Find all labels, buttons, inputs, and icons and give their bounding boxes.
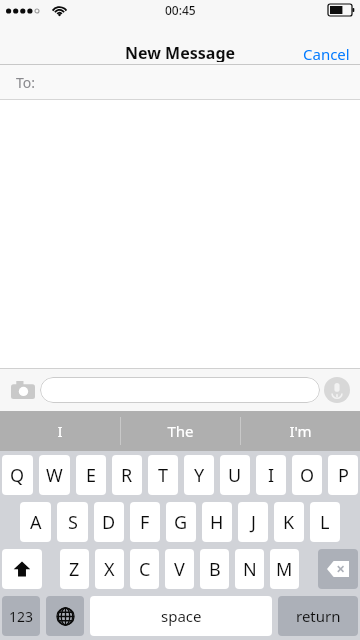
staticText: N [243, 557, 257, 582]
button[interactable]: X [95, 549, 124, 589]
button[interactable]: E [76, 455, 106, 495]
button[interactable]: G [166, 502, 196, 542]
button[interactable]: To: [0, 65, 360, 99]
button[interactable]: Q [2, 455, 33, 495]
button[interactable]: O [292, 455, 322, 495]
button[interactable]: return [278, 596, 358, 636]
button[interactable]: F [130, 502, 160, 542]
button[interactable]: Z [60, 549, 89, 589]
button[interactable]: Next keyboard [46, 596, 84, 636]
button[interactable]: space [90, 596, 272, 636]
staticText: U [228, 463, 242, 488]
button[interactable]: I [256, 455, 286, 495]
staticText: S [68, 510, 78, 535]
staticText: C [139, 557, 151, 582]
staticText: space [161, 606, 202, 626]
button[interactable]: Cancel [293, 44, 360, 64]
button[interactable]: P [328, 455, 358, 495]
staticText: I [57, 421, 63, 441]
button[interactable]: T [148, 455, 178, 495]
button[interactable]: R [112, 455, 142, 495]
button[interactable]: M [270, 549, 299, 589]
staticText: P [338, 463, 349, 488]
staticText: 00:45 [165, 2, 196, 18]
staticText: O [300, 463, 315, 488]
staticText: D [102, 510, 116, 535]
staticText: return [296, 606, 341, 626]
button[interactable]: 123 [2, 596, 40, 636]
staticText: To: [16, 73, 36, 92]
button[interactable] [40, 377, 320, 403]
staticText: L [320, 510, 330, 535]
button[interactable]: Y [184, 455, 214, 495]
staticText: 123 [9, 607, 34, 626]
button[interactable]: Shift [2, 549, 42, 589]
staticText: Y [194, 463, 205, 488]
staticText: R [121, 463, 133, 488]
button[interactable]: S [57, 502, 88, 542]
staticText: A [30, 510, 42, 535]
staticText: V [174, 557, 185, 582]
staticText: I'm [289, 421, 312, 441]
staticText: B [209, 557, 221, 582]
staticText: W [46, 463, 63, 488]
button[interactable]: K [274, 502, 304, 542]
button[interactable]: The [121, 411, 240, 451]
staticText: The [167, 421, 194, 441]
button[interactable]: V [165, 549, 194, 589]
staticText: F [140, 510, 150, 535]
button[interactable]: A [20, 502, 51, 542]
button[interactable]: U [220, 455, 250, 495]
staticText: G [174, 510, 188, 535]
button[interactable]: W [39, 455, 70, 495]
button[interactable]: C [130, 549, 159, 589]
button[interactable]: I [0, 411, 120, 451]
staticText: Z [69, 557, 80, 582]
button[interactable]: J [238, 502, 268, 542]
staticText: New Message [125, 42, 236, 62]
staticText: Cancel [303, 44, 350, 60]
button[interactable]: L [310, 502, 340, 542]
button[interactable]: Camera [6, 373, 40, 407]
button[interactable]: N [235, 549, 264, 589]
staticText: M [276, 557, 293, 582]
button[interactable]: Dictate [320, 373, 354, 407]
button[interactable]: Delete [318, 549, 358, 589]
staticText: I [268, 463, 275, 488]
staticText: K [283, 510, 295, 535]
button[interactable]: I'm [241, 411, 360, 451]
staticText: T [158, 463, 169, 488]
button[interactable]: D [94, 502, 124, 542]
staticText: X [104, 557, 115, 582]
button[interactable]: B [200, 549, 229, 589]
button[interactable]: H [202, 502, 232, 542]
staticText: J [251, 510, 256, 535]
staticText: Q [10, 463, 25, 488]
staticText: H [210, 510, 224, 535]
staticText: E [86, 463, 97, 488]
